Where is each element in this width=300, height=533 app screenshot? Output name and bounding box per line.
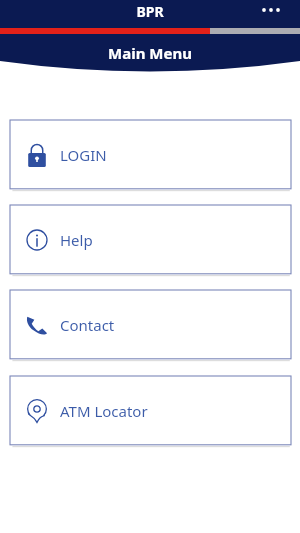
button[interactable]: LOGIN: [10, 120, 291, 190]
staticText: ATM Locator: [60, 401, 148, 421]
button[interactable]: Contact: [10, 290, 291, 360]
staticText: BPR: [0, 2, 300, 21]
staticText: Help: [60, 230, 93, 250]
staticText: Main Menu: [0, 43, 300, 63]
button[interactable]: More options: [254, 0, 288, 20]
button[interactable]: Help: [10, 205, 291, 275]
staticText: LOGIN: [60, 145, 107, 165]
button[interactable]: ATM Locator: [10, 376, 291, 446]
staticText: Contact: [60, 315, 115, 335]
